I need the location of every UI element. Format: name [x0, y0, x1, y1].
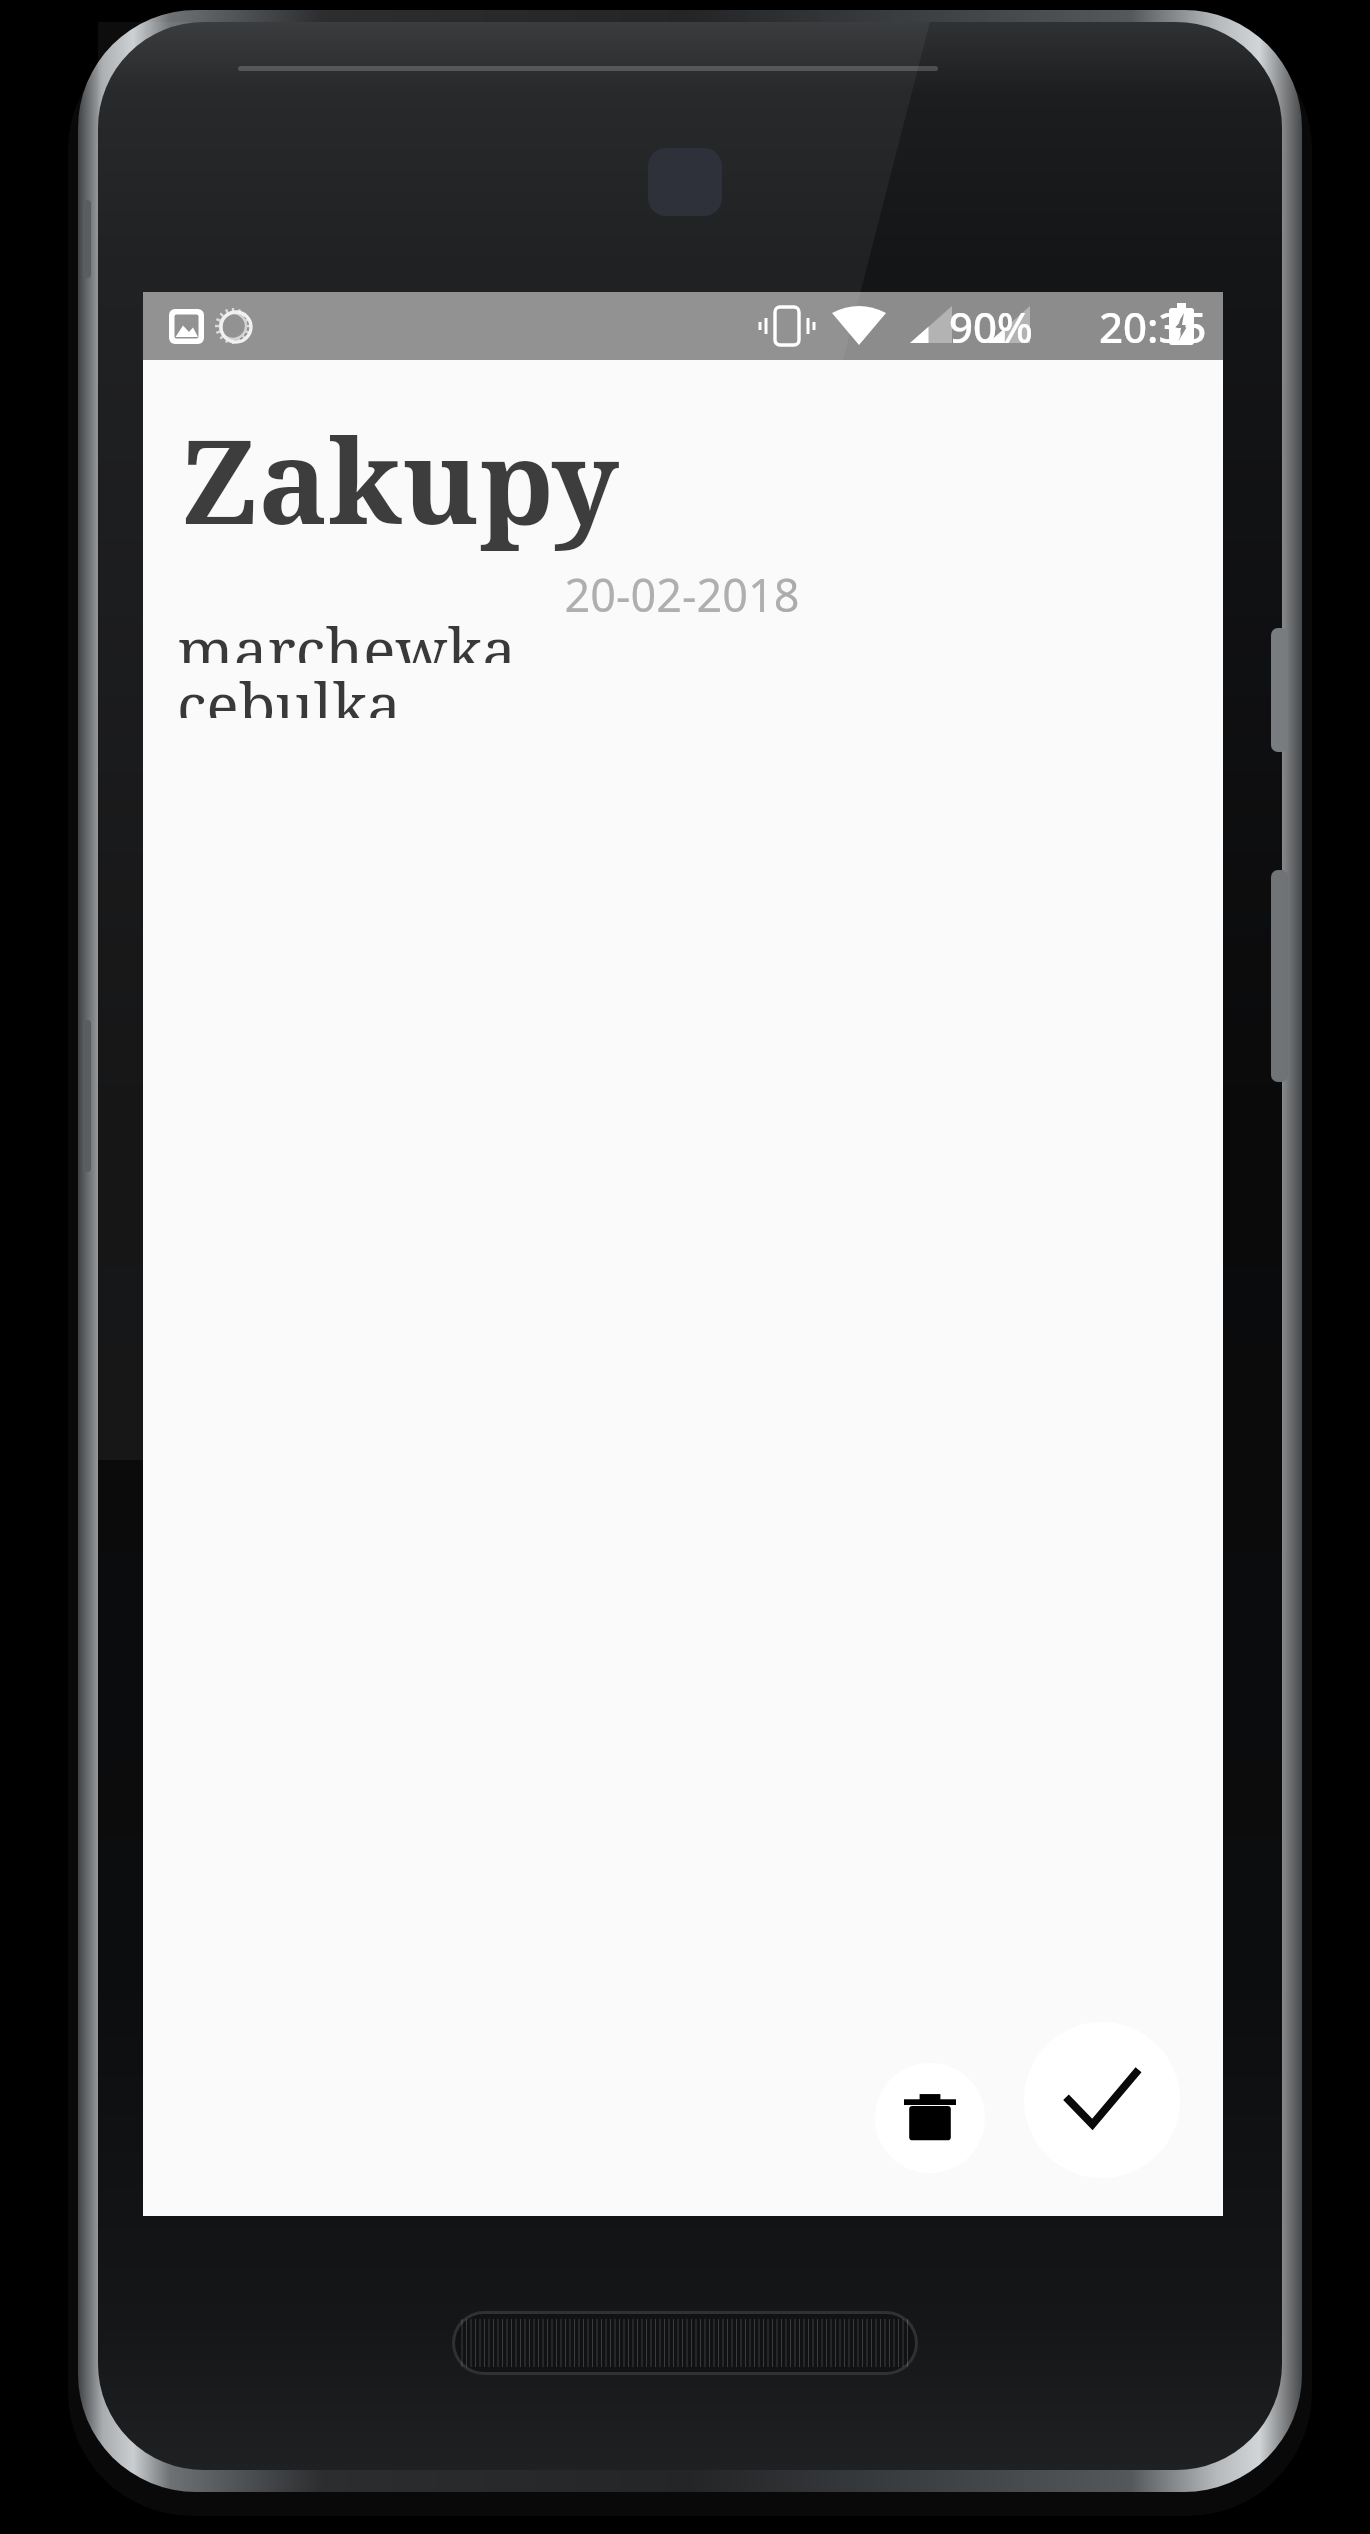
- staticText: cebulka: [177, 663, 402, 718]
- staticText: marchewka: [177, 608, 517, 663]
- button[interactable]: Confirm: [1024, 2022, 1180, 2178]
- button[interactable]: cebulka: [177, 663, 1187, 718]
- button[interactable]: Delete list: [875, 2063, 985, 2173]
- button[interactable]: marchewka: [177, 608, 1187, 663]
- staticText: 90%: [949, 298, 1033, 355]
- staticText: 20:35: [1099, 298, 1207, 355]
- staticText: Zakupy: [181, 400, 619, 558]
- staticText: 20-02-2018: [143, 564, 1221, 625]
